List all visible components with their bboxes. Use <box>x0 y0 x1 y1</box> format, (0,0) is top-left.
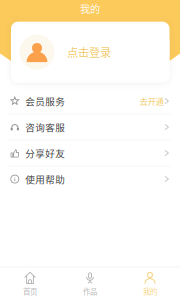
button[interactable]: 使用帮助 <box>0 166 180 192</box>
button[interactable]: 作品 <box>60 267 120 300</box>
staticText: 咨询客服 <box>25 120 65 134</box>
button[interactable]: 咨询客服 <box>0 114 180 140</box>
staticText: 使用帮助 <box>25 172 65 186</box>
staticText: 我的 <box>143 286 157 297</box>
staticText: 我的 <box>80 1 100 16</box>
button[interactable]: 会员服务 <box>0 88 180 114</box>
staticText: 首页 <box>23 286 37 297</box>
button[interactable]: 分享好友 <box>0 140 180 166</box>
staticText: 去开通 <box>139 95 163 107</box>
button[interactable]: 点击登录 <box>11 22 169 83</box>
button[interactable]: 首页 <box>0 267 60 300</box>
staticText: 会员服务 <box>25 94 65 108</box>
staticText: 点击登录 <box>67 44 111 60</box>
staticText: 分享好友 <box>25 146 65 160</box>
staticText: 作品 <box>83 286 97 297</box>
button[interactable]: 我的 <box>120 267 180 300</box>
